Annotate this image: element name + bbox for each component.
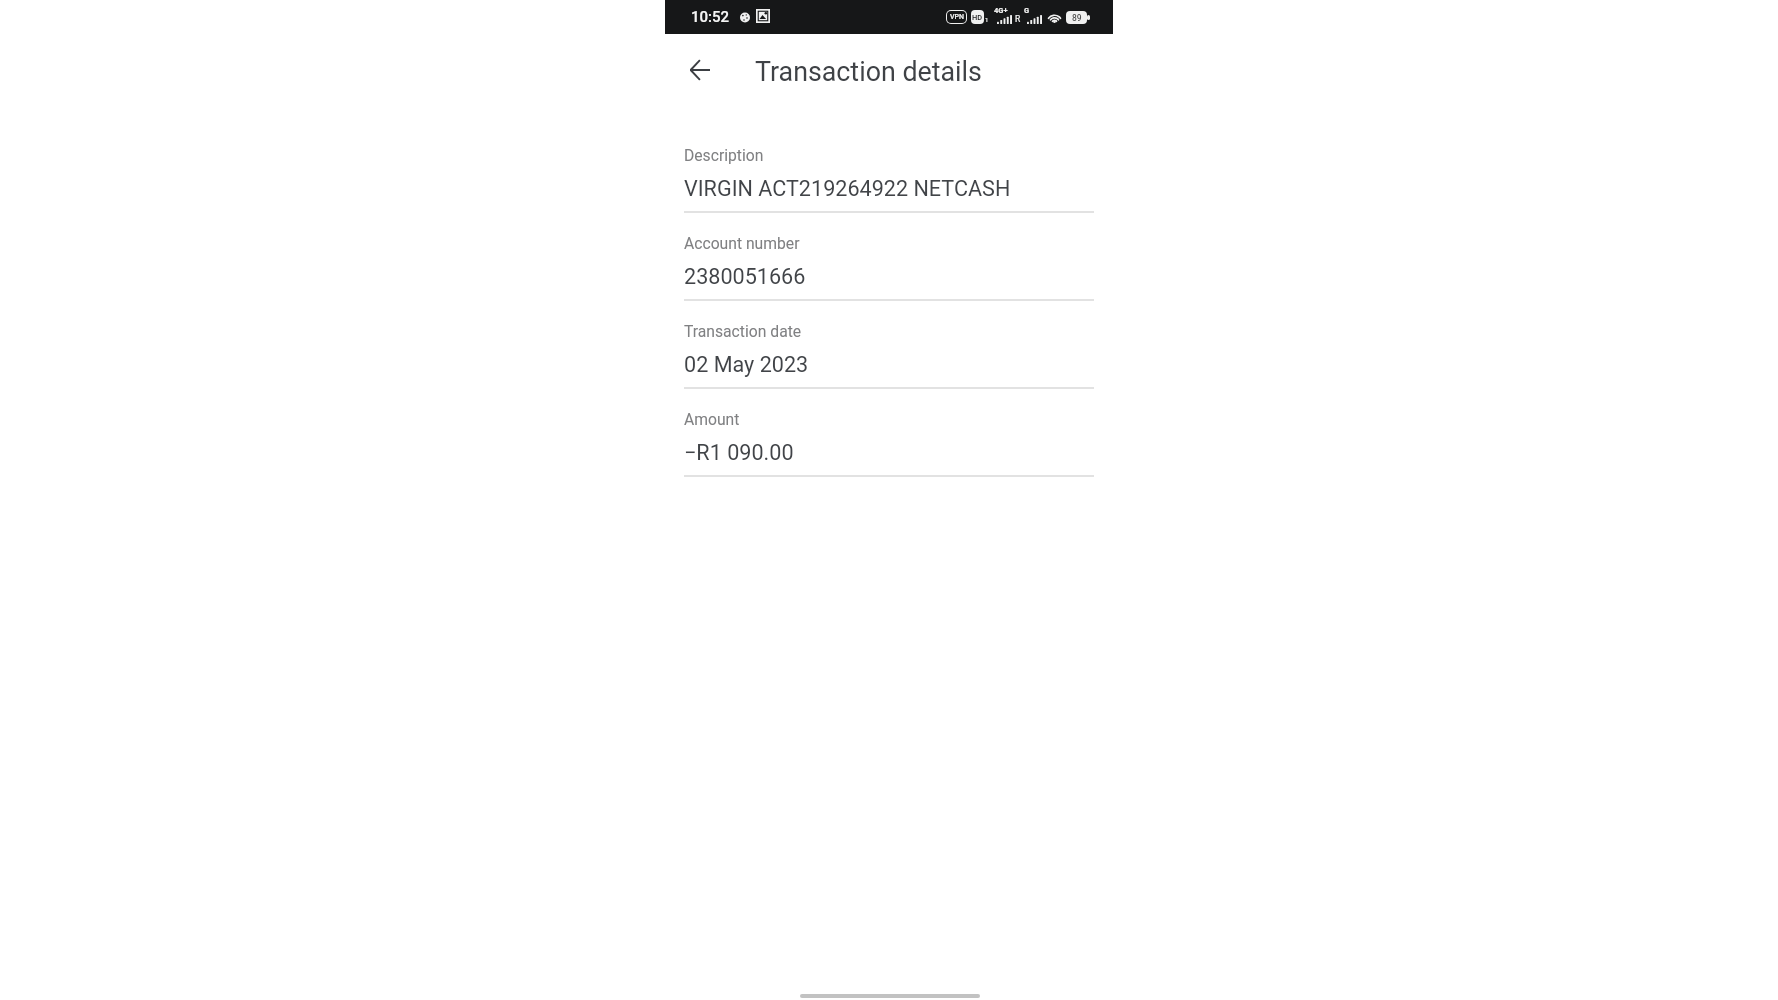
staticText: Account number [684, 234, 800, 252]
staticText: 4G+ [994, 6, 1008, 15]
staticText: 10:52 [691, 8, 730, 26]
staticText: VPN [950, 13, 964, 21]
staticText: Amount [684, 410, 740, 428]
button[interactable]: Transaction date [684, 301, 1094, 389]
staticText: VIRGIN ACT219264922 NETCASH [684, 176, 1011, 201]
staticText: 1 [985, 16, 989, 23]
button[interactable]: Account number [684, 213, 1094, 301]
staticText: HD [972, 13, 983, 22]
staticText: Transaction date [684, 322, 802, 340]
button[interactable]: Back [678, 48, 722, 92]
staticText: R [1015, 14, 1021, 24]
staticText: Transaction details [755, 56, 982, 87]
staticText: 02 May 2023 [684, 352, 809, 377]
staticText: 89 [1072, 13, 1082, 23]
button[interactable]: Amount [684, 389, 1094, 477]
staticText: −R1 090.00 [684, 440, 794, 465]
button[interactable]: Description [684, 125, 1094, 213]
staticText: 2380051666 [684, 264, 806, 289]
staticText: Description [684, 146, 764, 164]
staticText: G [1024, 6, 1030, 15]
